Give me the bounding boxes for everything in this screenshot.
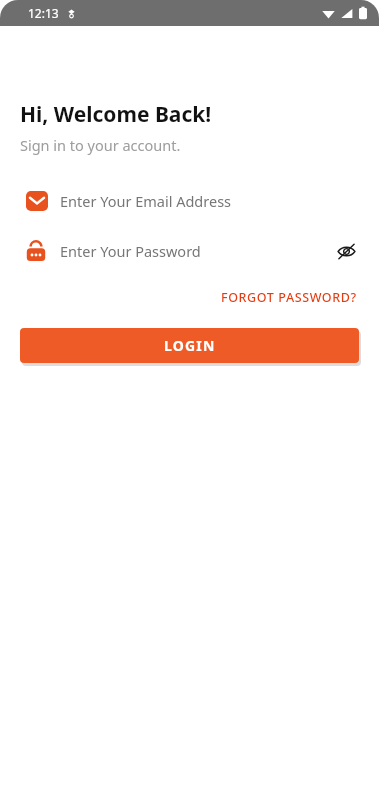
staticText: Enter Your Email Address	[60, 191, 232, 211]
staticText: FORGOT PASSWORD?	[221, 289, 357, 306]
button[interactable]: Enter Your Password	[0, 231, 379, 271]
button[interactable]: Show password	[331, 236, 361, 266]
staticText: LOGIN	[164, 336, 216, 355]
staticText: Sign in to your account.	[20, 135, 181, 155]
button[interactable]: FORGOT PASSWORD?	[219, 287, 359, 308]
button[interactable]: Enter Your Email Address	[0, 181, 379, 221]
staticText: 12:13	[28, 5, 59, 21]
button[interactable]: LOGIN	[20, 328, 359, 363]
staticText: Hi, Welcome Back!	[20, 100, 212, 129]
staticText: Enter Your Password	[60, 241, 201, 261]
